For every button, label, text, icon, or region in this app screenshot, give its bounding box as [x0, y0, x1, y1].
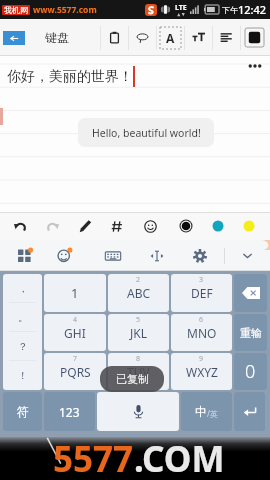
button[interactable]: Text style: [156, 19, 184, 56]
staticText: 我机网: [4, 5, 28, 15]
button[interactable]: Redo: [38, 212, 66, 240]
button[interactable]: 符: [3, 392, 42, 431]
staticText: GHI: [64, 325, 86, 341]
button[interactable]: Emoji: [48, 240, 80, 271]
staticText: 5: [136, 315, 141, 325]
staticText: 6: [199, 315, 204, 325]
staticText: JKL: [130, 325, 147, 341]
button[interactable]: Apps: [9, 240, 41, 271]
button[interactable]: Back: [3, 31, 25, 45]
button[interactable]: Colour: [172, 212, 200, 240]
button[interactable]: DEF: [171, 274, 232, 312]
button[interactable]: 123: [44, 392, 95, 431]
staticText: 。: [18, 311, 28, 324]
button[interactable]: ABC: [108, 274, 169, 312]
button[interactable]: Emoji: [136, 212, 164, 240]
button[interactable]: Align: [212, 19, 240, 56]
button[interactable]: Colour: [240, 19, 268, 56]
staticText: .COM: [134, 435, 225, 478]
staticText: www.5577.com: [33, 4, 97, 16]
button[interactable]: GHI: [44, 314, 106, 351]
staticText: 你好，美丽的世界！: [7, 68, 133, 86]
staticText: A: [166, 30, 175, 46]
staticText: ，: [18, 282, 28, 295]
button[interactable]: TUV: [108, 353, 169, 390]
button[interactable]: Comment: [128, 19, 156, 56]
staticText: 键盘: [45, 30, 69, 45]
staticText: /英: [207, 408, 218, 419]
button[interactable]: Backspace: [234, 274, 267, 312]
button[interactable]: PQRS: [44, 353, 106, 390]
button[interactable]: Tag: [103, 212, 131, 240]
button[interactable]: 1: [44, 274, 106, 312]
staticText: 中: [195, 404, 207, 419]
button[interactable]: Font size: [184, 19, 212, 56]
staticText: WXYZ: [186, 364, 218, 380]
button[interactable]: Clipboard: [100, 19, 128, 56]
staticText: 已复制: [116, 372, 149, 386]
staticText: 符: [17, 404, 29, 419]
staticText: 0: [245, 359, 256, 384]
staticText: PQRS: [60, 364, 91, 380]
staticText: 5577: [53, 435, 134, 478]
staticText: 下午: [222, 5, 238, 15]
staticText: TUV: [127, 364, 150, 380]
staticText: 3: [199, 275, 204, 285]
button[interactable]: MNO: [171, 314, 232, 351]
button[interactable]: Undo: [6, 212, 34, 240]
staticText: ！: [18, 369, 28, 382]
staticText: ABC: [127, 285, 151, 301]
staticText: MNO: [187, 325, 217, 341]
staticText: ？: [18, 340, 28, 353]
button[interactable]: Settings: [184, 240, 216, 271]
button[interactable]: Move cursor: [141, 240, 173, 271]
staticText: 1: [71, 284, 79, 302]
staticText: 12:42: [238, 2, 267, 17]
button[interactable]: Pen: [71, 212, 99, 240]
button[interactable]: Voice input: [97, 392, 179, 431]
staticText: DEF: [191, 285, 213, 301]
button[interactable]: Hide keyboard: [231, 240, 263, 271]
button[interactable]: 重输: [234, 314, 267, 351]
button[interactable]: Colour: [235, 212, 263, 240]
button[interactable]: 0: [234, 353, 267, 390]
staticText: 4: [73, 315, 78, 325]
button[interactable]: 中: [181, 392, 232, 431]
staticText: Hello, beautiful world!: [92, 126, 201, 140]
button[interactable]: JKL: [108, 314, 169, 351]
button[interactable]: WXYZ: [171, 353, 232, 390]
button[interactable]: Keyboard: [97, 240, 129, 271]
button[interactable]: Punctuation: [3, 274, 42, 390]
staticText: LTE: [175, 3, 187, 13]
staticText: 2: [136, 275, 141, 285]
staticText: 8: [136, 354, 141, 364]
staticText: 9: [199, 354, 204, 364]
button[interactable]: More options: [244, 58, 266, 74]
staticText: 重输: [240, 326, 262, 340]
button[interactable]: Voice input: [234, 392, 265, 431]
button[interactable]: Colour: [204, 212, 232, 240]
staticText: 7: [73, 354, 78, 364]
staticText: 123: [59, 404, 80, 420]
